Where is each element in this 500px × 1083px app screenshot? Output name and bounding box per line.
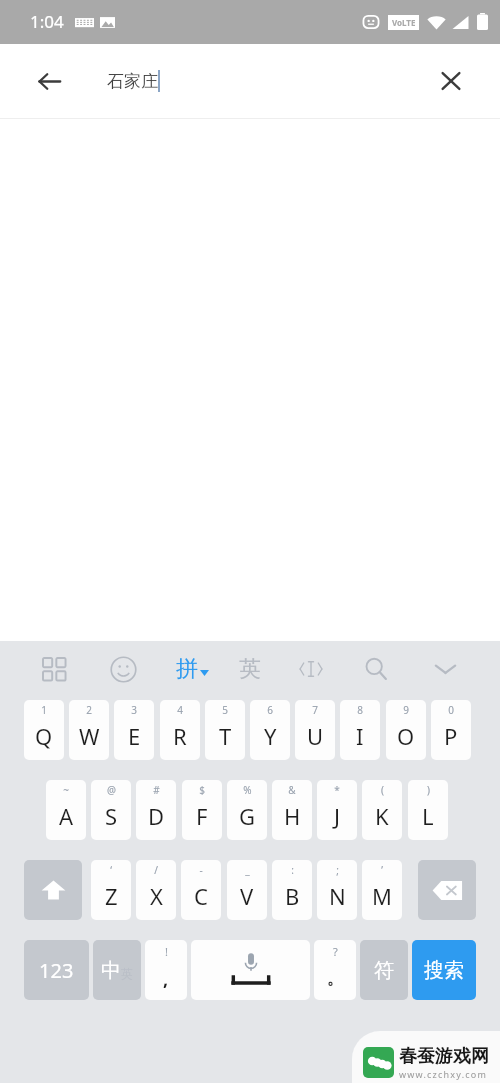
- staticText: Q: [35, 721, 53, 751]
- staticText: X: [150, 881, 163, 911]
- button[interactable]: @: [91, 780, 131, 840]
- button[interactable]: ?: [314, 940, 356, 1000]
- staticText: 123: [39, 957, 74, 984]
- staticText: (: [381, 783, 384, 797]
- staticText: 英: [239, 655, 261, 683]
- staticText: 符: [374, 958, 394, 983]
- button[interactable]: Move cursor: [287, 641, 335, 697]
- button[interactable]: -: [181, 860, 221, 920]
- staticText: D: [148, 801, 165, 831]
- button[interactable]: 5: [205, 700, 245, 760]
- staticText: L: [422, 801, 434, 831]
- button[interactable]: *: [317, 780, 357, 840]
- staticText: *: [334, 783, 340, 797]
- staticText: :: [291, 863, 294, 877]
- button[interactable]: Emoji: [99, 641, 147, 697]
- staticText: 中: [101, 958, 121, 983]
- button[interactable]: Hide keyboard: [421, 641, 469, 697]
- staticText: M: [372, 881, 392, 911]
- staticText: !: [165, 944, 168, 959]
- staticText: R: [173, 721, 187, 751]
- button[interactable]: 拼: [166, 641, 218, 697]
- staticText: -: [199, 863, 203, 877]
- staticText: ’: [381, 863, 383, 877]
- staticText: Z: [105, 881, 118, 911]
- staticText: G: [239, 801, 256, 831]
- button[interactable]: 4: [160, 700, 200, 760]
- button[interactable]: 3: [114, 700, 154, 760]
- button[interactable]: 1: [24, 700, 64, 760]
- staticText: $: [199, 783, 205, 797]
- staticText: C: [194, 881, 208, 911]
- button[interactable]: Space: [191, 940, 310, 1000]
- staticText: 。: [327, 969, 343, 989]
- button[interactable]: &: [272, 780, 312, 840]
- button[interactable]: 中: [93, 940, 141, 1000]
- button[interactable]: Backspace: [418, 860, 476, 920]
- staticText: 1: [41, 703, 47, 717]
- staticText: E: [128, 721, 141, 751]
- button[interactable]: /: [136, 860, 176, 920]
- staticText: A: [59, 801, 74, 831]
- button[interactable]: 英: [226, 641, 274, 697]
- staticText: ;: [336, 863, 339, 877]
- staticText: 1:04: [30, 10, 64, 33]
- staticText: H: [284, 801, 301, 831]
- staticText: S: [105, 801, 118, 831]
- button[interactable]: Shift: [24, 860, 82, 920]
- button[interactable]: Keyboard layouts: [30, 641, 78, 697]
- staticText: T: [219, 721, 232, 751]
- staticText: ~: [63, 783, 69, 797]
- button[interactable]: 123: [24, 940, 89, 1000]
- staticText: ,: [163, 967, 169, 992]
- button[interactable]: _: [227, 860, 267, 920]
- staticText: 2: [86, 703, 92, 717]
- staticText: 5: [222, 703, 228, 717]
- staticText: 8: [357, 703, 363, 717]
- staticText: ?: [333, 944, 338, 959]
- button[interactable]: 2: [69, 700, 109, 760]
- button[interactable]: 符: [360, 940, 408, 1000]
- button[interactable]: Back: [26, 58, 72, 104]
- staticText: I: [356, 721, 364, 751]
- staticText: 英: [121, 966, 133, 981]
- staticText: &: [288, 783, 296, 797]
- staticText: B: [285, 881, 300, 911]
- staticText: 石家庄: [107, 71, 158, 92]
- button[interactable]: 搜索: [412, 940, 476, 1000]
- button[interactable]: Clear text: [428, 58, 474, 104]
- button[interactable]: 6: [250, 700, 290, 760]
- button[interactable]: ): [408, 780, 448, 840]
- button[interactable]: 7: [295, 700, 335, 760]
- staticText: _: [245, 863, 250, 877]
- button[interactable]: ’: [362, 860, 402, 920]
- staticText: 9: [403, 703, 409, 717]
- staticText: 0: [448, 703, 454, 717]
- button[interactable]: :: [272, 860, 312, 920]
- staticText: #: [153, 783, 160, 797]
- staticText: 4: [177, 703, 183, 717]
- button[interactable]: ;: [317, 860, 357, 920]
- button[interactable]: Search: [352, 641, 400, 697]
- button[interactable]: $: [182, 780, 222, 840]
- staticText: U: [307, 721, 324, 751]
- staticText: K: [375, 801, 389, 831]
- button[interactable]: 9: [386, 700, 426, 760]
- button[interactable]: ‘: [91, 860, 131, 920]
- button[interactable]: (: [362, 780, 402, 840]
- button[interactable]: #: [136, 780, 176, 840]
- button[interactable]: ~: [46, 780, 86, 840]
- staticText: www.czchxy.com: [399, 1068, 488, 1080]
- button[interactable]: %: [227, 780, 267, 840]
- button[interactable]: 0: [431, 700, 471, 760]
- staticText: @: [107, 783, 116, 797]
- staticText: %: [243, 783, 252, 797]
- button[interactable]: 8: [340, 700, 380, 760]
- staticText: ‘: [110, 863, 112, 877]
- staticText: O: [397, 721, 415, 751]
- staticText: 拼: [176, 655, 198, 683]
- button[interactable]: !: [145, 940, 187, 1000]
- staticText: ): [427, 783, 430, 797]
- staticText: 3: [131, 703, 137, 717]
- staticText: /: [154, 863, 158, 877]
